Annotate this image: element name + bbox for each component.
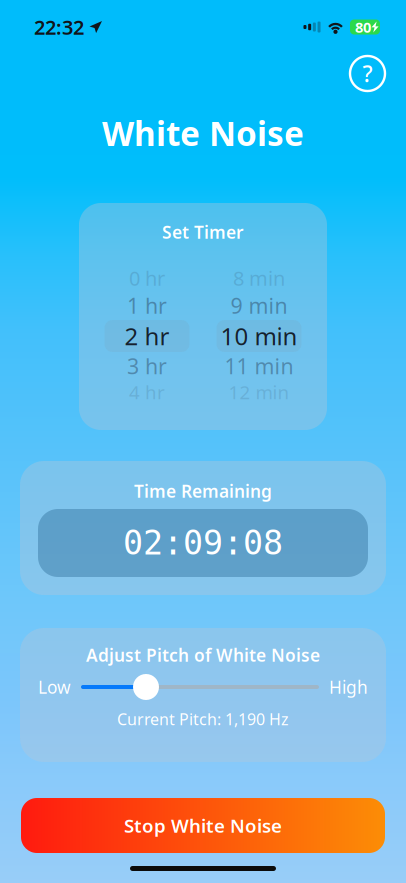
staticText: White Noise	[102, 111, 304, 155]
staticText: 9 min	[230, 291, 287, 320]
staticText: 2 hr	[124, 320, 169, 352]
staticText: 12 min	[228, 380, 289, 404]
staticText: 10 min	[220, 320, 297, 352]
staticText: 1 hr	[127, 291, 167, 320]
staticText: Time Remaining	[134, 479, 272, 502]
staticText: Stop White Noise	[124, 813, 282, 838]
button[interactable]: Help	[350, 56, 385, 91]
staticText: Set Timer	[162, 220, 244, 243]
staticText: 3 hr	[127, 352, 167, 380]
staticText: Adjust Pitch of White Noise	[86, 643, 320, 666]
staticText: 80	[355, 17, 371, 37]
staticText: 4 hr	[129, 380, 165, 404]
staticText: 22:32	[34, 14, 84, 40]
staticText: 8 min	[233, 265, 285, 291]
staticText: ?	[362, 58, 372, 88]
staticText: 11 min	[224, 352, 293, 380]
staticText: Current Pitch: 1,190 Hz	[117, 708, 289, 730]
staticText: Low	[38, 675, 71, 698]
staticText: 02:09:08	[123, 524, 283, 562]
staticText: 0 hr	[129, 265, 165, 291]
staticText: High	[329, 675, 368, 698]
button[interactable]: Stop White Noise	[21, 798, 385, 853]
